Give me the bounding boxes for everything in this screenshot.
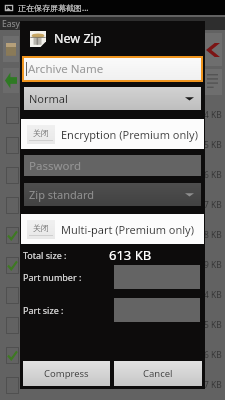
staticText: 5 KB (204, 319, 222, 331)
staticText: 4 KB (204, 109, 222, 121)
staticText: Easy (2, 18, 20, 30)
staticText: Total size : (23, 249, 67, 261)
button[interactable]: 关闭 (21, 214, 204, 244)
staticText: 5 KB (204, 139, 222, 151)
staticText: Multi-part (Premium only) (61, 222, 195, 237)
staticText: 6 KB (204, 169, 222, 181)
staticText: 7 KB (204, 199, 222, 211)
button[interactable]: Normal (24, 87, 201, 110)
staticText: Archive Name (28, 61, 104, 77)
staticText: Normal (29, 91, 68, 106)
staticText: 9 KB (204, 259, 222, 271)
staticText: 4 KB (204, 289, 222, 301)
staticText: 正在保存屏幕截图... (18, 2, 89, 13)
staticText: 6 KB (204, 349, 222, 361)
button[interactable]: Archive Name (24, 58, 201, 80)
button[interactable]: Compress (23, 361, 110, 386)
staticText: Part number : (23, 271, 82, 283)
staticText: Password (29, 158, 82, 174)
staticText: New Zip (54, 30, 102, 47)
staticText: 关闭 (33, 223, 49, 233)
staticText: 8 KB (204, 229, 222, 241)
staticText: Part size : (23, 304, 64, 316)
staticText: 关闭 (33, 128, 49, 138)
staticText: 613 KB (109, 246, 152, 264)
button[interactable]: 关闭 (21, 119, 204, 149)
staticText: Compress (44, 367, 89, 380)
staticText: Cancel (143, 367, 173, 380)
staticText: 7 KB (204, 379, 222, 391)
button[interactable]: Cancel (114, 361, 202, 386)
staticText: Zip standard (29, 187, 94, 202)
staticText: Encryption (Premium only) (61, 127, 198, 142)
button[interactable]: Zip standard (24, 183, 201, 206)
